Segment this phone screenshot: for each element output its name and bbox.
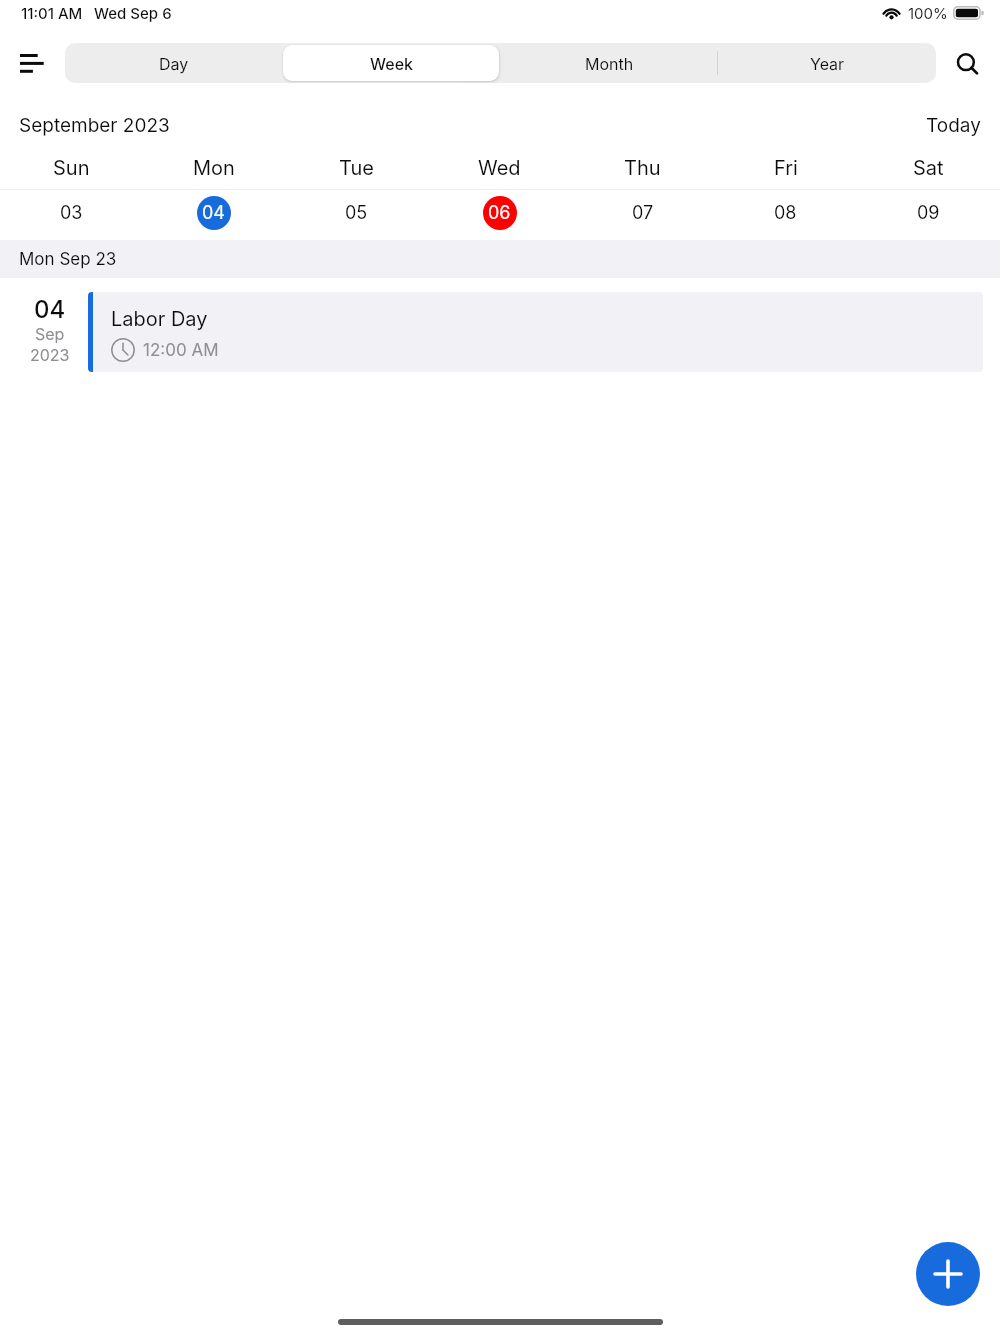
staticText: Day [159, 54, 189, 73]
button[interactable]: Menu [10, 41, 54, 85]
button[interactable]: Search [943, 41, 987, 85]
staticText: September 2023 [19, 114, 170, 137]
staticText: Labor Day [111, 307, 208, 331]
staticText: 04 [34, 295, 66, 324]
staticText: Mon [193, 156, 235, 180]
staticText: 08 [774, 202, 797, 224]
staticText: Tue [339, 156, 374, 180]
staticText: Mon Sep 23 [19, 249, 117, 270]
button[interactable]: 08 [714, 190, 857, 240]
staticText: Sat [913, 156, 944, 180]
staticText: 09 [917, 202, 940, 224]
button[interactable]: 05 [285, 190, 428, 240]
staticText: Today [926, 114, 981, 137]
staticText: Fri [774, 156, 798, 180]
staticText: Week [370, 54, 413, 73]
staticText: Wed Sep 6 [94, 4, 172, 22]
button[interactable]: Year [718, 43, 936, 83]
staticText: 05 [345, 202, 368, 224]
button[interactable]: 07 [571, 190, 714, 240]
staticText: 07 [632, 202, 654, 224]
button[interactable]: Add event [916, 1242, 980, 1306]
staticText: Wed [478, 156, 521, 180]
staticText: 04 [202, 202, 225, 224]
staticText: 06 [488, 202, 511, 224]
button[interactable]: 06 [428, 190, 571, 240]
staticText: 100% [908, 4, 948, 22]
button[interactable]: Labor Day [88, 292, 983, 372]
staticText: 2023 [30, 345, 70, 364]
staticText: 11:01 AM [21, 4, 83, 22]
button[interactable]: 04 [142, 190, 285, 240]
staticText: Thu [624, 156, 661, 180]
button[interactable]: 03 [0, 190, 142, 240]
staticText: 03 [60, 202, 83, 224]
staticText: 12:00 AM [143, 340, 219, 361]
button[interactable]: Today [914, 110, 1000, 141]
button[interactable]: 09 [857, 190, 1000, 240]
button[interactable]: Day [65, 43, 282, 83]
button[interactable]: Week [282, 43, 500, 83]
staticText: Year [810, 54, 845, 73]
staticText: Sun [53, 156, 90, 180]
staticText: Month [585, 54, 634, 73]
button[interactable]: Month [500, 43, 718, 83]
staticText: Sep [35, 324, 65, 343]
